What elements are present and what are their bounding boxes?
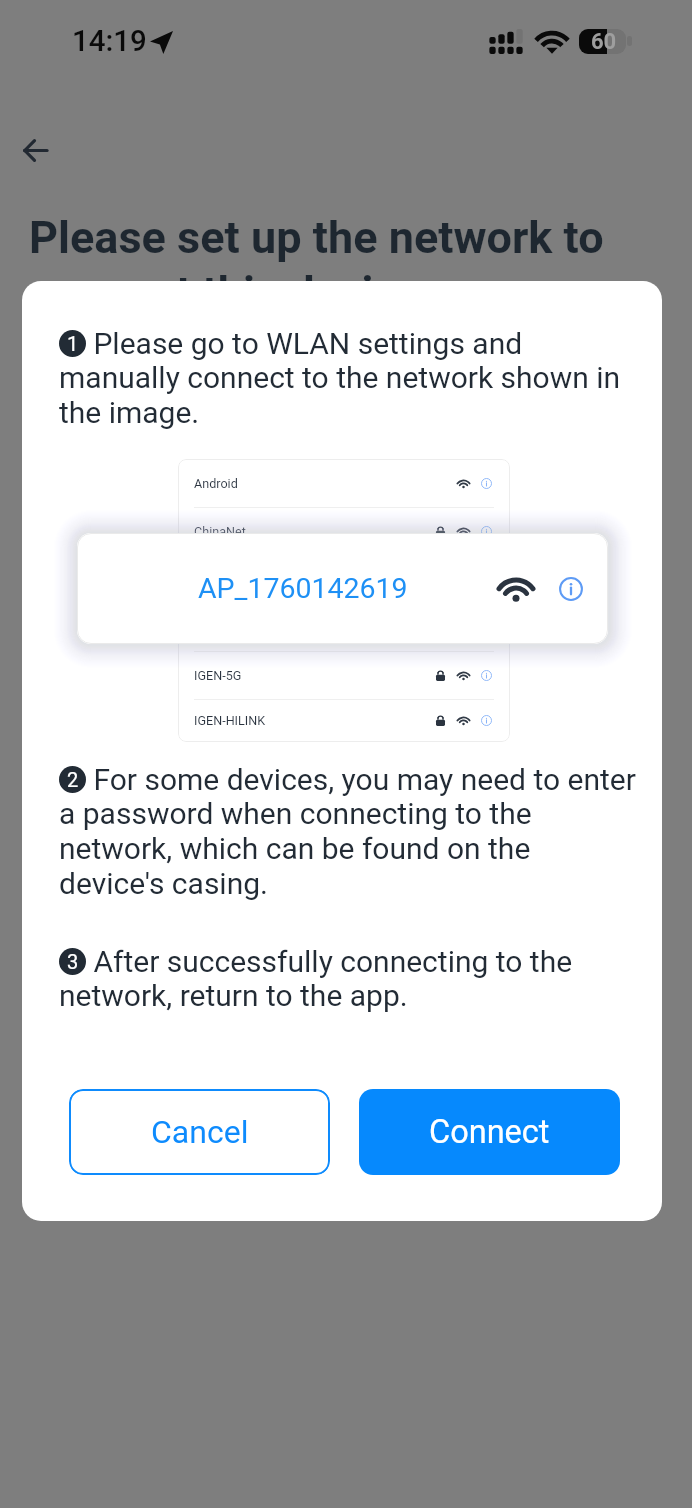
staticText: Please set up the network to connect thi…: [29, 211, 629, 319]
button[interactable]: Connect: [359, 1089, 620, 1175]
button[interactable]: Back: [7, 122, 63, 178]
staticText: Android: [194, 476, 238, 491]
staticText: # Please go to WLAN settings and manuall…: [59, 326, 642, 431]
staticText: AP_1760142619: [198, 572, 408, 605]
staticText: # After successfully connecting to the n…: [59, 944, 642, 1014]
staticText: # For some devices, you may need to ente…: [59, 762, 642, 902]
button[interactable]: Cancel: [69, 1089, 330, 1175]
staticText: 60: [591, 29, 617, 54]
staticText: ChinaNet: [194, 524, 246, 539]
staticText: TP-LINK_5F: [194, 572, 260, 587]
staticText: IGEN-5G: [194, 668, 242, 683]
staticText: IGEN-HILINK: [194, 713, 266, 728]
staticText: Connect: [429, 1113, 550, 1151]
staticText: Cancel: [151, 1113, 249, 1151]
staticText: 14:19: [72, 24, 147, 59]
staticText: 3: [67, 950, 79, 973]
staticText: 2: [67, 768, 79, 791]
staticText: 1: [67, 332, 79, 355]
